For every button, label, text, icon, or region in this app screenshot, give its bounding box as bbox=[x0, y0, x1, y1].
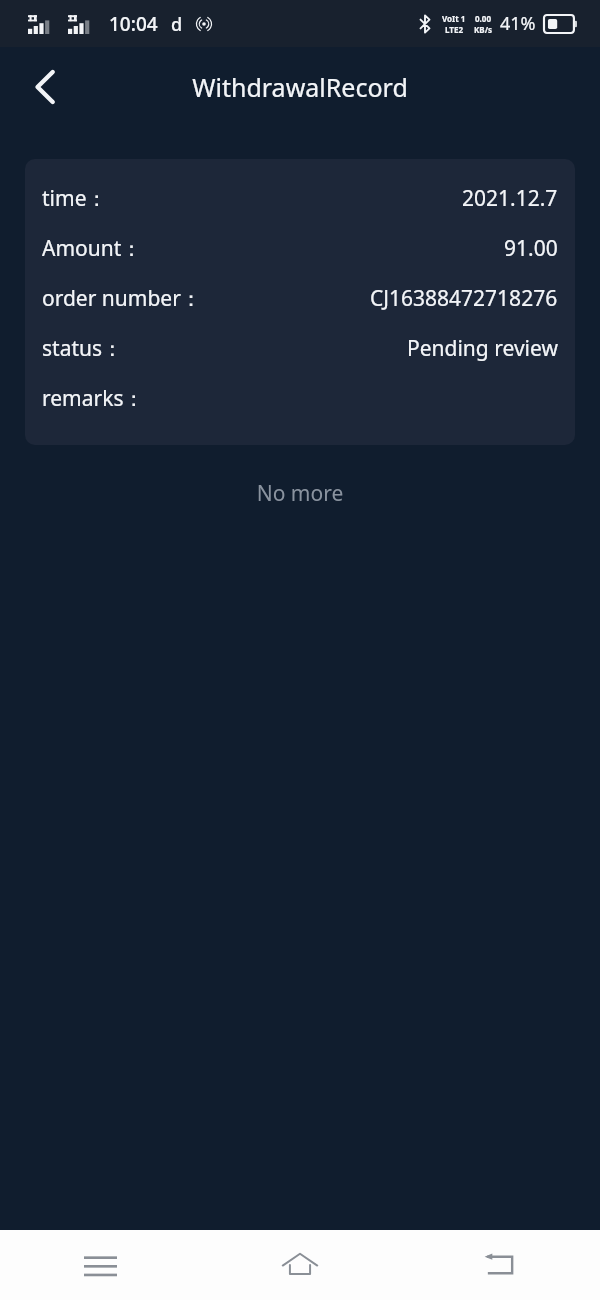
staticText: time： bbox=[42, 184, 108, 213]
staticText: VoIt 1 bbox=[442, 13, 466, 24]
button[interactable]: Back bbox=[400, 1230, 600, 1300]
staticText: CJ16388472718276 bbox=[370, 284, 558, 313]
staticText: remarks： bbox=[42, 384, 145, 413]
button[interactable]: Recent apps bbox=[0, 1230, 200, 1300]
staticText: 2021.12.7 bbox=[462, 184, 558, 213]
staticText: status： bbox=[42, 334, 124, 363]
staticText: order number： bbox=[42, 284, 202, 313]
staticText: WithdrawalRecord bbox=[0, 70, 600, 104]
staticText: KB/s bbox=[474, 24, 492, 35]
staticText: Amount： bbox=[42, 234, 143, 263]
button[interactable]: time： bbox=[25, 159, 575, 445]
staticText: 41% bbox=[500, 11, 536, 36]
button[interactable]: Back bbox=[16, 58, 74, 116]
staticText: Pending review bbox=[407, 334, 558, 363]
button[interactable]: Home bbox=[200, 1230, 400, 1300]
staticText: LTE2 bbox=[445, 24, 463, 35]
staticText: 10:04 bbox=[109, 11, 158, 37]
staticText: 0.00 bbox=[475, 13, 491, 24]
staticText: No more bbox=[0, 479, 600, 508]
staticText: 91.00 bbox=[504, 234, 558, 263]
staticText: d bbox=[171, 12, 183, 37]
